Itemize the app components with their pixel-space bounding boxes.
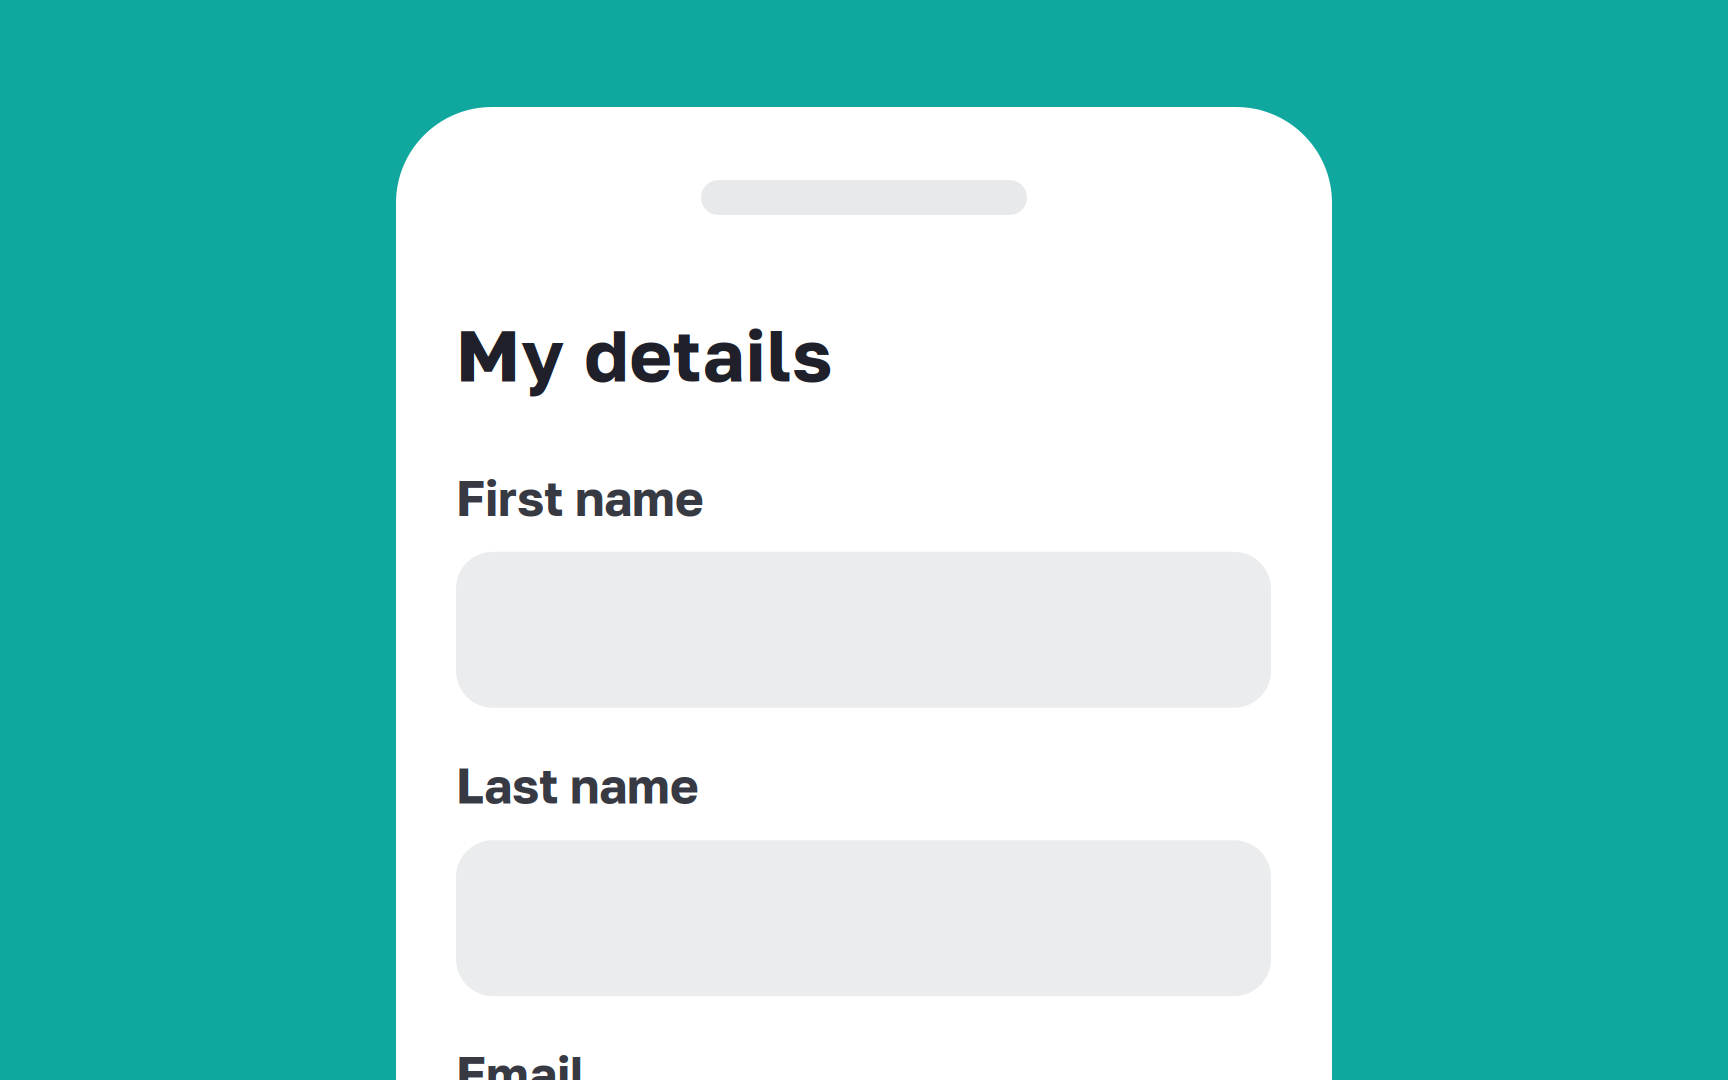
staticText: First name [456,468,704,527]
staticText: Last name [456,756,699,814]
staticText: My details [456,311,832,397]
staticText: Email [456,1044,586,1080]
